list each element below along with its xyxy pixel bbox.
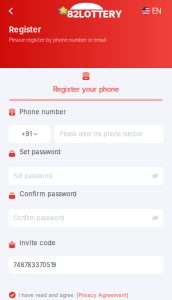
staticText: Register your phone (53, 85, 119, 93)
button[interactable]: Language: English (142, 3, 166, 19)
button[interactable]: Register your phone (0, 72, 172, 101)
staticText: Please enter the phone number (59, 130, 142, 138)
staticText: Phone number (19, 108, 65, 116)
staticText: 748783370519 (13, 261, 56, 269)
staticText: Confirm password (13, 214, 64, 222)
staticText: I have read and agree (19, 292, 74, 298)
staticText: Confirm password (19, 190, 76, 198)
button[interactable]: I have read and agree (9, 291, 164, 299)
staticText: +91 (21, 130, 31, 138)
staticText: Set password (19, 148, 60, 156)
staticText: EN (152, 6, 162, 15)
button[interactable]: Back (1, 2, 21, 20)
button[interactable]: +91 (8, 125, 50, 143)
staticText: [Privacy Agreement] (77, 292, 129, 298)
staticText: Invite code (19, 239, 55, 247)
staticText: Please register by phone number or email (9, 37, 106, 43)
staticText: Register (9, 25, 41, 34)
staticText: 82LOTTERY (67, 8, 122, 20)
staticText: Set password (13, 172, 52, 180)
